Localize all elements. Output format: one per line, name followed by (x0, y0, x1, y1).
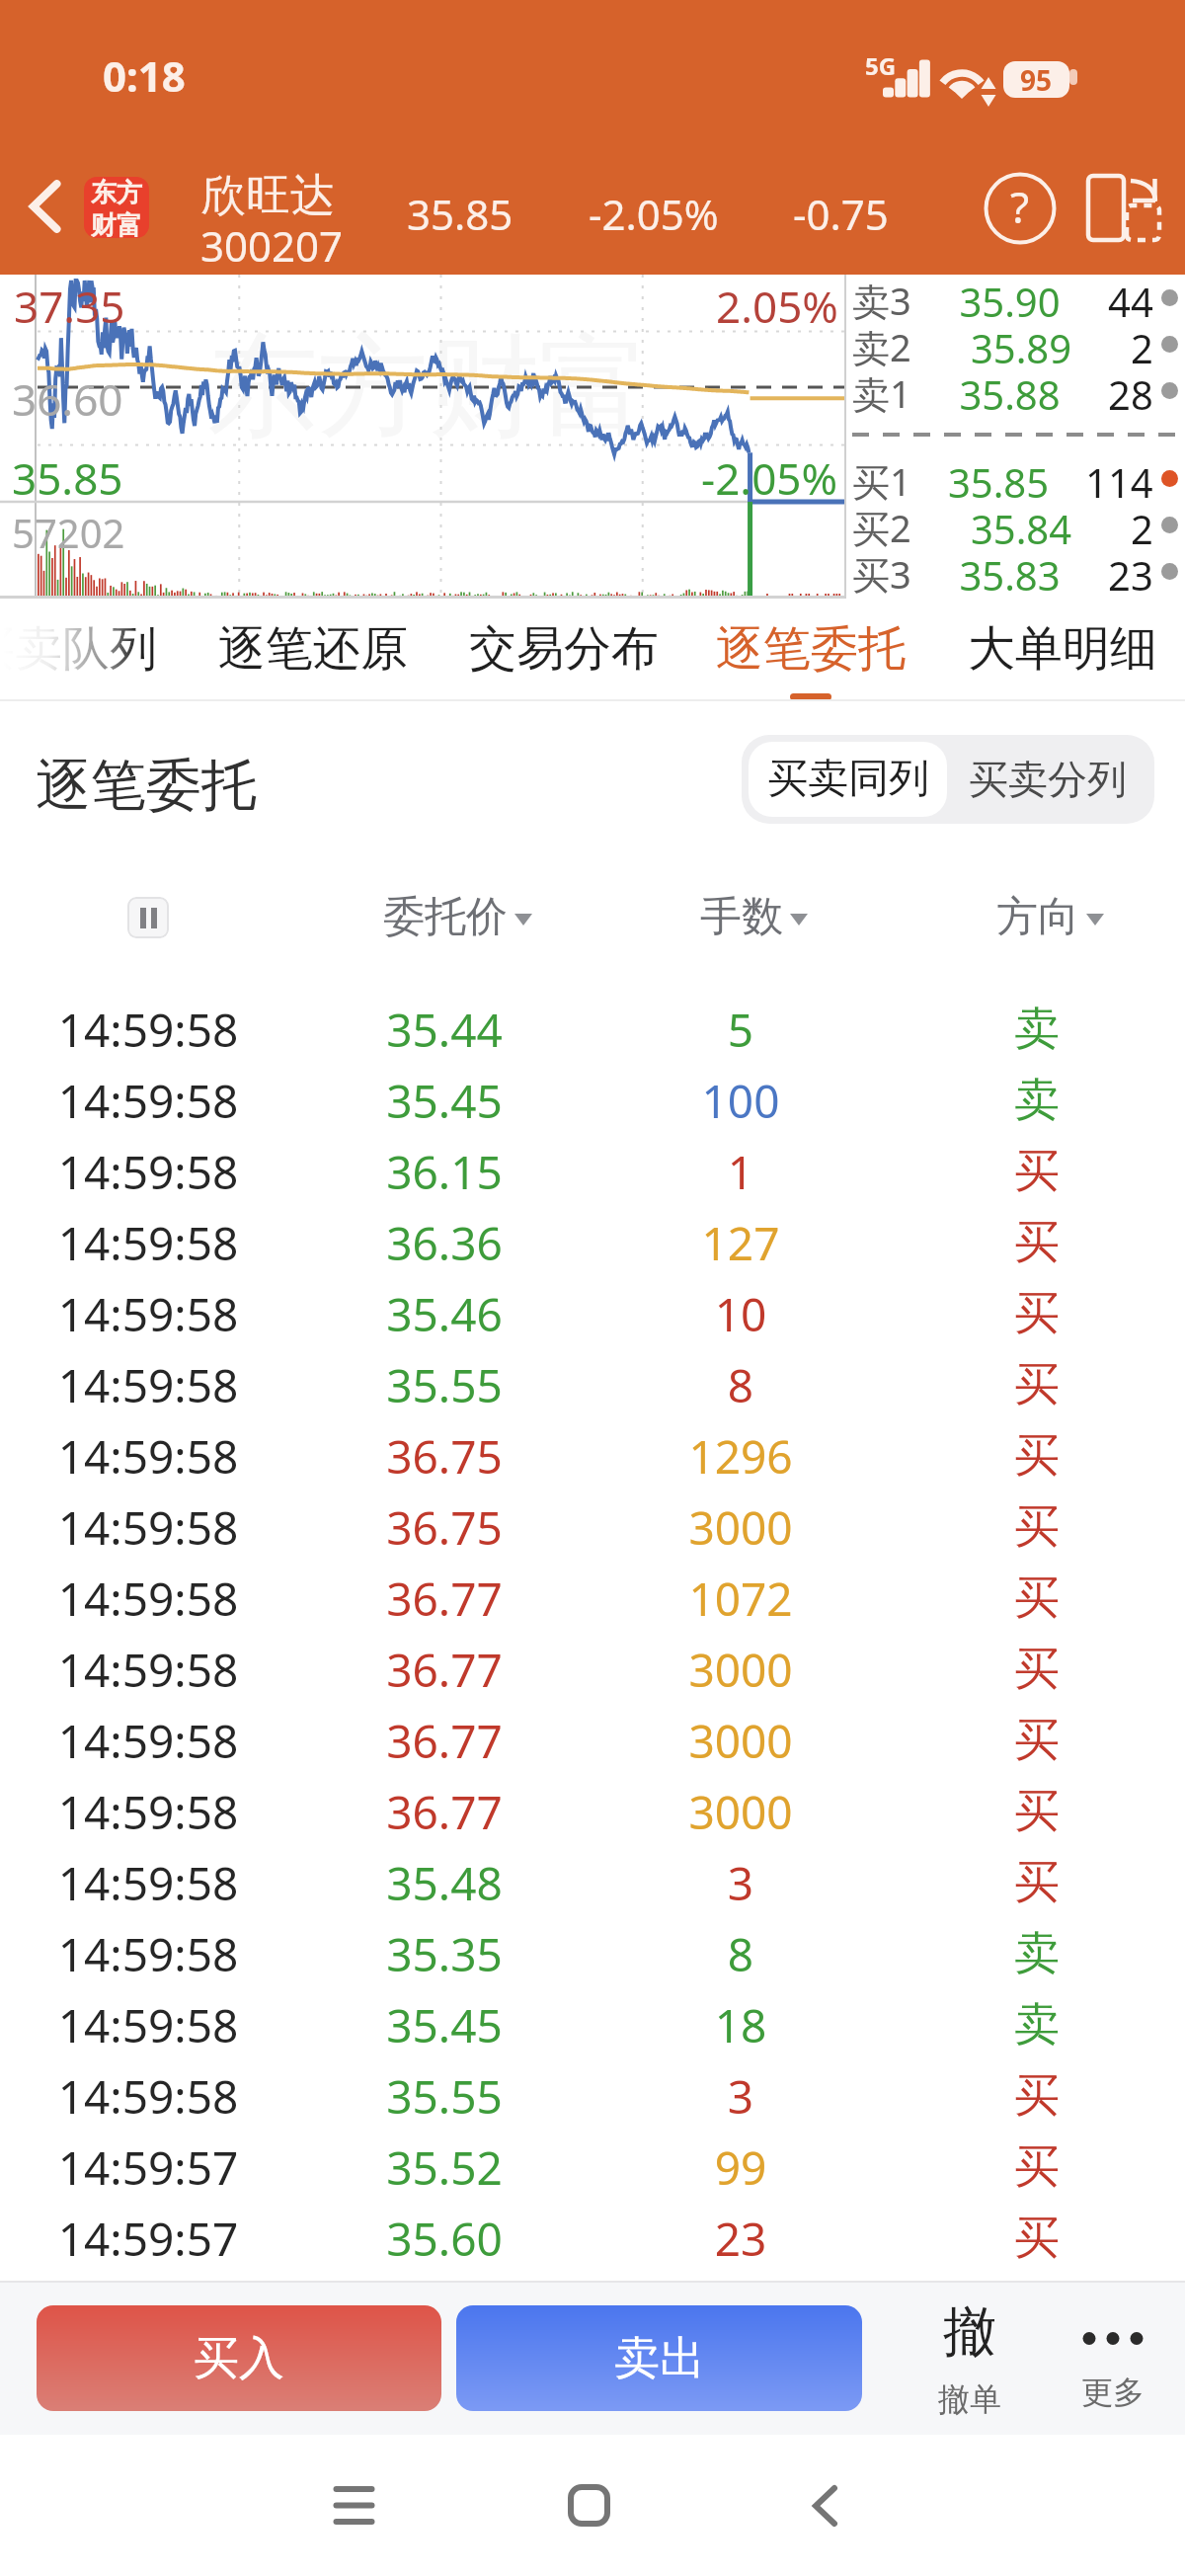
staticText: 方向 (996, 891, 1079, 943)
staticText: 35.60 (296, 2208, 592, 2270)
staticText: 卖 (889, 1996, 1185, 2053)
staticText: 买卖队列 (0, 619, 157, 679)
staticText: 35.45 (296, 1070, 592, 1132)
staticText: 35.83 (911, 548, 1108, 595)
button[interactable]: 买卖同列 (749, 742, 947, 817)
button[interactable]: 买1 (846, 455, 1185, 502)
button[interactable]: 14:59:57 (0, 2132, 1185, 2203)
button[interactable]: 14:59:58 (0, 1705, 1185, 1776)
button[interactable]: 14:59:58 (0, 994, 1185, 1065)
button[interactable]: 14:59:58 (0, 2060, 1185, 2132)
staticText: 35.85 (12, 448, 123, 508)
staticText: 买3 (852, 548, 911, 595)
button[interactable]: 14:59:58 (0, 1918, 1185, 1989)
button[interactable]: 方向 (931, 883, 1168, 950)
button[interactable]: 卖2 (846, 321, 1185, 367)
staticText: 0:18 (103, 47, 186, 104)
button[interactable]: 逐笔还原 (195, 599, 432, 701)
button[interactable]: 卖出 (456, 2305, 862, 2411)
staticText: 卖2 (852, 321, 911, 367)
staticText: 买 (889, 2210, 1185, 2267)
staticText: 14:59:58 (0, 1141, 296, 1203)
staticText: 35.52 (296, 2136, 592, 2199)
staticText: 买 (889, 1570, 1185, 1627)
staticText: 14:59:58 (0, 1070, 296, 1132)
staticText: 36.77 (296, 1781, 592, 1843)
staticText: 300207 (200, 217, 344, 274)
staticText: 2 (1131, 321, 1153, 367)
staticText: 8 (592, 1354, 889, 1416)
staticText: ? (1010, 177, 1030, 236)
button[interactable]: 买卖队列 (0, 599, 181, 701)
button[interactable]: 14:59:58 (0, 1278, 1185, 1349)
button[interactable]: 手数 (635, 883, 872, 950)
staticText: 买 (889, 1143, 1185, 1200)
button[interactable]: Pause (127, 897, 169, 938)
button[interactable]: 交易分布 (445, 599, 682, 701)
button[interactable]: 14:59:58 (0, 1491, 1185, 1563)
button[interactable]: 撤 (901, 2283, 1039, 2435)
button[interactable]: 买入 (37, 2305, 441, 2411)
staticText: 36.77 (296, 1710, 592, 1772)
button[interactable]: 卖1 (846, 367, 1185, 414)
staticText: 3 (592, 1852, 889, 1914)
staticText: 买卖同列 (767, 754, 929, 805)
staticText: 买 (889, 1641, 1185, 1698)
staticText: 57202 (12, 506, 125, 559)
button[interactable]: 14:59:58 (0, 1847, 1185, 1918)
button[interactable]: 更多 (1044, 2283, 1182, 2435)
button[interactable]: Back (765, 2435, 884, 2576)
staticText: 99 (592, 2136, 889, 2199)
staticText: 35.44 (296, 999, 592, 1061)
button[interactable]: Recent apps (294, 2435, 413, 2576)
button[interactable]: 买卖分列 (947, 742, 1147, 817)
button[interactable]: Help (976, 164, 1065, 253)
button[interactable]: 14:59:58 (0, 1776, 1185, 1847)
staticText: 114 (1085, 455, 1153, 502)
staticText: 东方 (91, 177, 142, 209)
staticText: 买 (889, 1783, 1185, 1840)
staticText: 14:59:58 (0, 1781, 296, 1843)
staticText: 14:59:58 (0, 1710, 296, 1772)
button[interactable]: 逐笔委托 (692, 599, 929, 701)
staticText: 2.05% (716, 277, 838, 336)
staticText: 23 (592, 2208, 889, 2270)
button[interactable]: 14:59:58 (0, 1989, 1185, 2060)
staticText: 逐笔委托 (36, 751, 257, 821)
staticText: 买 (889, 2067, 1185, 2125)
button[interactable]: 14:59:58 (0, 1207, 1185, 1278)
staticText: 100 (592, 1070, 889, 1132)
staticText: 14:59:58 (0, 999, 296, 1061)
staticText: 东方财富 (207, 318, 650, 457)
button[interactable]: Home (529, 2435, 648, 2576)
staticText: 1072 (592, 1568, 889, 1630)
staticText: 14:59:58 (0, 2065, 296, 2128)
staticText: 8 (592, 1923, 889, 1985)
staticText: 14:59:58 (0, 1639, 296, 1701)
staticText: 35.85 (407, 186, 513, 242)
button[interactable]: 14:59:58 (0, 1136, 1185, 1207)
button[interactable]: 大单明细 (944, 599, 1181, 701)
button[interactable]: 14:59:57 (0, 2203, 1185, 2274)
button[interactable]: 14:59:58 (0, 1420, 1185, 1491)
staticText: 3000 (592, 1781, 889, 1843)
button[interactable]: 买3 (846, 548, 1185, 595)
staticText: 卖 (889, 1072, 1185, 1129)
button[interactable]: Rotate screen (1076, 157, 1175, 256)
staticText: 36.77 (296, 1639, 592, 1701)
button[interactable]: 买2 (846, 502, 1185, 548)
staticText: 14:59:58 (0, 1212, 296, 1274)
staticText: 28 (1108, 367, 1153, 414)
button[interactable]: 委托价 (339, 883, 576, 950)
staticText: 44 (1108, 275, 1153, 321)
button[interactable]: 14:59:58 (0, 1065, 1185, 1136)
staticText: -2.05% (701, 448, 838, 508)
button[interactable]: Back (0, 137, 91, 275)
button[interactable]: 14:59:58 (0, 1349, 1185, 1420)
button[interactable]: 14:59:58 (0, 1563, 1185, 1634)
button[interactable]: 14:59:58 (0, 1634, 1185, 1705)
button[interactable]: 卖3 (846, 275, 1185, 321)
staticText: -2.05% (589, 186, 719, 242)
staticText: 3000 (592, 1639, 889, 1701)
staticText: 35.48 (296, 1852, 592, 1914)
